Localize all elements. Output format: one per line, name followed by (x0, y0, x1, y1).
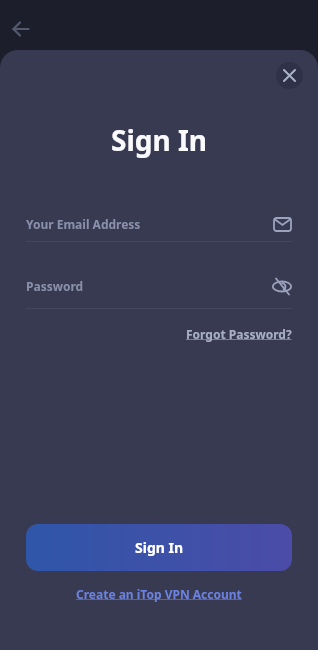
button[interactable]: Create an iTop VPN Account (76, 586, 242, 602)
button[interactable] (6, 14, 36, 44)
staticText: Sign In (135, 538, 184, 557)
staticText: Password (26, 278, 84, 294)
staticText: Forgot Password? (186, 326, 292, 342)
staticText: Sign In (111, 121, 208, 159)
staticText: Your Email Address (26, 216, 141, 232)
button[interactable]: Forgot Password? (186, 326, 292, 342)
button[interactable]: Your Email Address (26, 213, 292, 235)
button[interactable]: Password (26, 275, 292, 297)
button[interactable] (276, 62, 303, 89)
button[interactable]: Sign In (26, 524, 292, 571)
staticText: Create an iTop VPN Account (76, 586, 242, 602)
